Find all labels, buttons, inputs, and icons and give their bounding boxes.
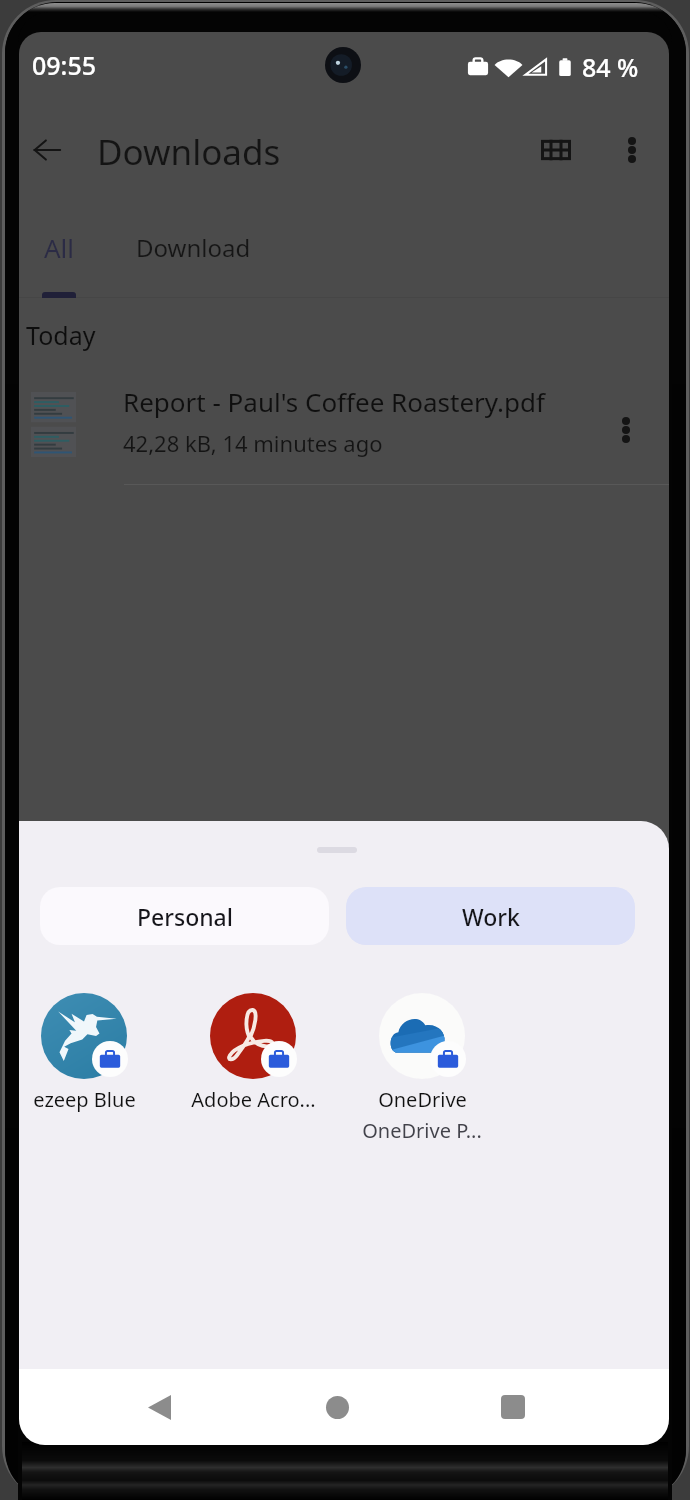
staticText: Personal [137, 901, 233, 932]
button[interactable]: OneDrive [327, 985, 517, 1115]
staticText: ezeep Blue [33, 1086, 136, 1113]
staticText: All [44, 230, 75, 265]
staticText: Today [26, 318, 96, 352]
button[interactable]: All [19, 214, 99, 280]
button[interactable]: Home [289, 1369, 385, 1445]
staticText: 09:55 [32, 48, 97, 82]
staticText: Report - Paul's Coffee Roastery.pdf [123, 384, 545, 419]
staticText: Downloads [97, 128, 281, 176]
staticText: Download [136, 231, 251, 264]
button[interactable]: ezeep Blue [19, 985, 179, 1115]
staticText: Adobe Acro... [191, 1086, 316, 1113]
staticText: Work [462, 901, 520, 932]
button[interactable]: File options [600, 404, 652, 456]
button[interactable]: Personal [40, 887, 329, 945]
button[interactable]: Back [111, 1369, 207, 1445]
staticText: OneDrive [378, 1086, 467, 1113]
button[interactable]: Download [118, 214, 269, 280]
button[interactable]: More options [604, 122, 660, 178]
staticText: 84 % [582, 50, 639, 84]
button[interactable]: Work [346, 887, 635, 945]
button[interactable]: Report - Paul's Coffee Roastery.pdf [19, 384, 669, 484]
button[interactable]: Adobe Acro... [158, 985, 348, 1115]
staticText: 42,28 kB, 14 minutes ago [123, 428, 383, 458]
button[interactable]: Switch to grid view [528, 122, 584, 178]
button[interactable]: Navigate up [19, 122, 75, 178]
button[interactable]: Recent apps [465, 1369, 561, 1445]
staticText: OneDrive P... [362, 1117, 482, 1144]
